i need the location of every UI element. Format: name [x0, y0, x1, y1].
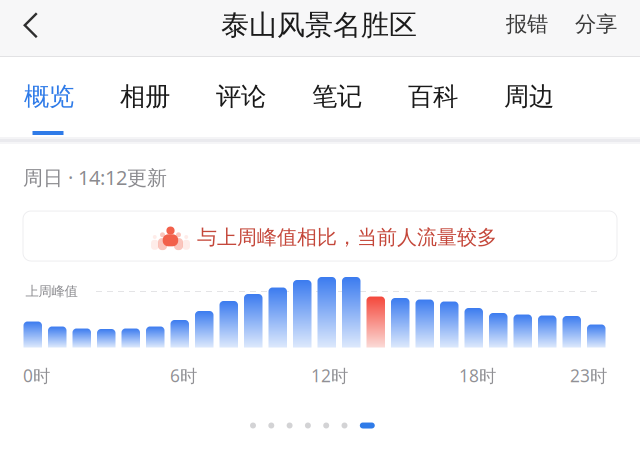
staticText: 概览 — [24, 81, 74, 112]
button[interactable]: 评论 — [216, 57, 312, 142]
button[interactable]: 报错 — [495, 0, 561, 57]
staticText: 相册 — [120, 81, 170, 112]
staticText: 分享 — [575, 11, 617, 37]
staticText: 18时 — [459, 364, 496, 387]
staticText: 评论 — [216, 81, 266, 112]
button[interactable]: 百科 — [408, 57, 504, 142]
staticText: 上周峰值 — [25, 283, 77, 299]
staticText: 0时 — [23, 364, 50, 387]
staticText: 6时 — [170, 364, 197, 387]
button[interactable]: 分享 — [565, 0, 631, 57]
button[interactable]: 返回 — [0, 0, 62, 57]
staticText: 周边 — [504, 81, 554, 112]
button[interactable]: 笔记 — [312, 57, 408, 142]
staticText: 12时 — [311, 364, 348, 387]
button[interactable]: 概览 — [24, 57, 120, 142]
staticText: 报错 — [506, 11, 548, 37]
staticText: 周日 · 14:12更新 — [23, 164, 167, 191]
staticText: 百科 — [408, 81, 458, 112]
staticText: 23时 — [570, 364, 607, 387]
staticText: 与上周峰值相比，当前人流量较多 — [197, 225, 497, 250]
button[interactable]: 相册 — [120, 57, 216, 142]
staticText: 笔记 — [312, 81, 362, 112]
button[interactable]: 周边 — [504, 57, 600, 142]
staticText: 泰山风景名胜区 — [221, 8, 417, 42]
